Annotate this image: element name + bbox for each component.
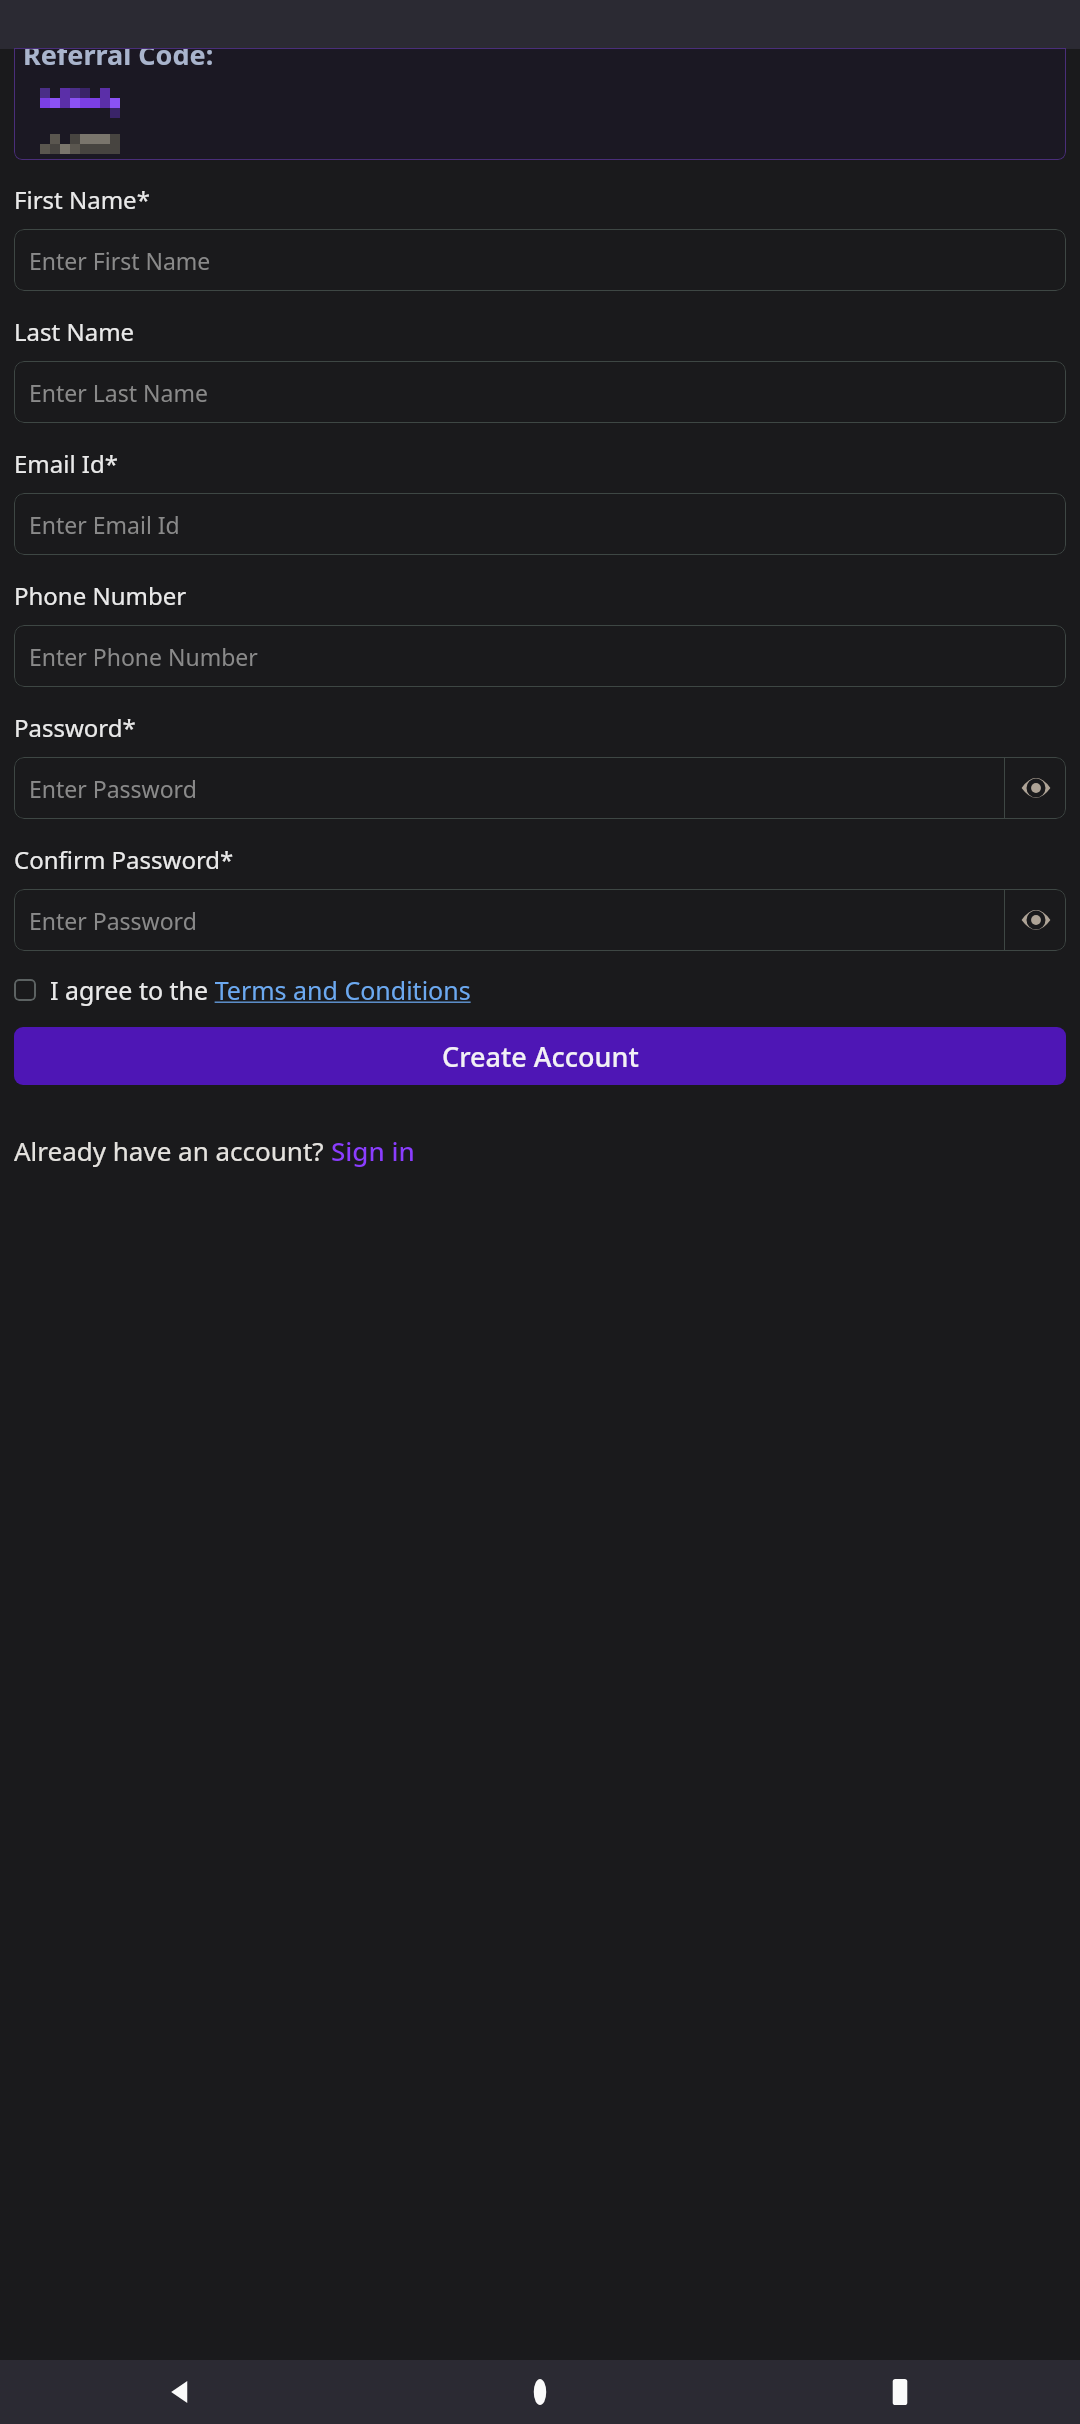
staticText: Last Name xyxy=(14,315,135,348)
button[interactable]: Enter Phone Number xyxy=(14,625,1066,687)
staticText: Enter Last Name xyxy=(29,377,208,408)
staticText: Enter Password xyxy=(29,773,197,804)
button[interactable]: Already have an account? xyxy=(14,1133,415,1168)
staticText: Already have an account? xyxy=(14,1133,331,1168)
button[interactable]: Enter Email Id xyxy=(14,493,1066,555)
button[interactable]: Enter Password xyxy=(14,757,1004,819)
staticText: Phone Number xyxy=(14,579,187,612)
button[interactable]: Recent apps xyxy=(720,2360,1080,2424)
staticText: Enter Phone Number xyxy=(29,641,258,672)
staticText: I agree to the Terms and Conditions xyxy=(50,973,471,1007)
button[interactable]: Show password xyxy=(1005,757,1066,819)
button[interactable]: Referral Code: xyxy=(14,48,1066,160)
staticText: Password* xyxy=(14,711,136,744)
button[interactable]: Show password xyxy=(1005,889,1066,951)
staticText: First Name* xyxy=(14,183,150,216)
button[interactable]: I agree to the Terms and Conditions xyxy=(14,973,471,1007)
button[interactable]: Enter Password xyxy=(14,889,1004,951)
staticText: Enter Email Id xyxy=(29,509,180,540)
button[interactable]: Enter Last Name xyxy=(14,361,1066,423)
staticText: Create Account xyxy=(442,1038,639,1075)
staticText: Sign in xyxy=(331,1133,415,1168)
staticText: Confirm Password* xyxy=(14,843,234,876)
staticText: Email Id* xyxy=(14,447,118,480)
staticText: Enter Password xyxy=(29,905,197,936)
button[interactable]: Enter First Name xyxy=(14,229,1066,291)
staticText: Referral Code: xyxy=(23,48,214,73)
button[interactable]: Back xyxy=(0,2360,360,2424)
button[interactable]: Home xyxy=(360,2360,720,2424)
staticText: Enter First Name xyxy=(29,245,211,276)
button[interactable]: Create Account xyxy=(14,1027,1066,1085)
